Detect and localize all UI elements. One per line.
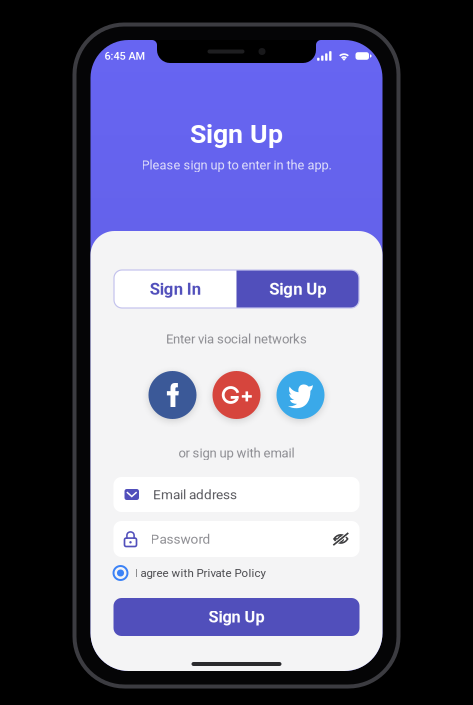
staticText: Enter via social networks bbox=[166, 331, 307, 347]
staticText: Sign Up bbox=[269, 279, 326, 299]
button[interactable]: Sign up with Google bbox=[212, 371, 260, 419]
staticText: Sign Up bbox=[190, 118, 283, 150]
staticText: I agree with Private Policy bbox=[134, 566, 265, 580]
button[interactable]: Password bbox=[113, 521, 359, 557]
staticText: 6:45 AM bbox=[104, 50, 145, 62]
button[interactable]: I agree with Private Policy bbox=[113, 565, 359, 581]
staticText: or sign up with email bbox=[178, 445, 294, 461]
staticText: Email address bbox=[153, 486, 237, 502]
button[interactable]: Sign In bbox=[114, 270, 236, 308]
button[interactable]: Sign Up bbox=[236, 270, 359, 308]
staticText: Password bbox=[150, 531, 210, 547]
staticText: Sign In bbox=[150, 279, 201, 299]
staticText: Sign Up bbox=[208, 607, 264, 627]
button[interactable]: Sign Up bbox=[113, 598, 359, 636]
button[interactable]: Sign up with Facebook bbox=[148, 371, 196, 419]
button[interactable]: Email address bbox=[113, 477, 359, 512]
button[interactable]: Sign up with Twitter bbox=[276, 371, 324, 419]
staticText: Please sign up to enter in the app. bbox=[141, 157, 331, 172]
